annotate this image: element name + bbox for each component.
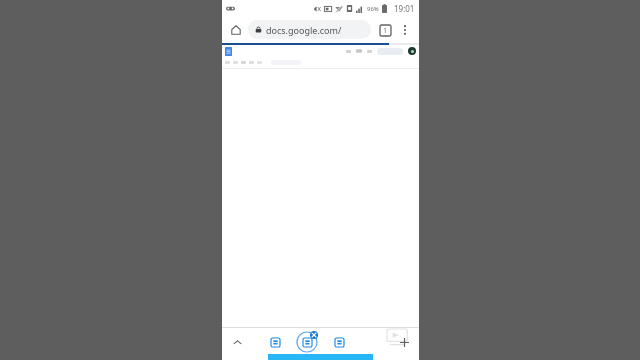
button[interactable]: Expand toolbar — [228, 333, 246, 351]
staticText: 96% — [367, 5, 379, 13]
button[interactable]: Contacts — [266, 333, 284, 351]
staticText: 19:01 — [394, 3, 415, 14]
button[interactable]: Account — [408, 47, 416, 55]
staticText: 1 — [383, 26, 388, 36]
button[interactable]: Close clipboard — [296, 331, 318, 353]
staticText: docs.google.com/docum — [266, 24, 365, 36]
button[interactable]: Clipboard — [330, 333, 348, 351]
button[interactable]: More options — [396, 21, 414, 39]
button[interactable]: Switch tabs, 1 open — [376, 21, 394, 39]
button[interactable]: docs.google.com/docum — [248, 20, 371, 39]
button[interactable]: More — [395, 333, 413, 351]
button[interactable]: Home — [227, 21, 245, 39]
